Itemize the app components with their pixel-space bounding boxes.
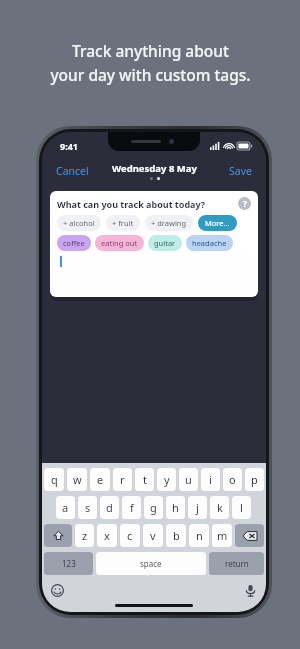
button[interactable]: v (143, 524, 163, 547)
button[interactable]: w (67, 468, 87, 491)
button[interactable]: q (44, 468, 64, 491)
staticText: j (196, 500, 199, 515)
staticText: + drawing (151, 218, 187, 228)
button[interactable]: b (166, 524, 186, 547)
button[interactable]: Cancel (52, 161, 93, 181)
staticText: Save (229, 164, 252, 178)
staticText: h (172, 500, 179, 515)
staticText: x (104, 528, 110, 543)
staticText: m (217, 528, 228, 543)
staticText: f (130, 500, 134, 515)
button[interactable]: u (179, 468, 198, 491)
staticText: l (240, 500, 243, 515)
button[interactable]: j (188, 496, 207, 519)
staticText: v (150, 528, 156, 543)
staticText: 9:41 (60, 140, 78, 152)
staticText: y (164, 472, 170, 487)
button[interactable]: Shift (44, 524, 72, 547)
button[interactable]: Emoji (51, 584, 64, 597)
button[interactable]: + drawing (145, 215, 193, 231)
staticText: n (196, 528, 203, 543)
staticText: + alcohol (63, 218, 95, 228)
staticText: eating out (101, 238, 138, 248)
staticText: ? (243, 198, 247, 209)
button[interactable]: More... (198, 215, 237, 231)
button[interactable]: x (97, 524, 117, 547)
button[interactable]: + alcohol (57, 215, 101, 231)
button[interactable]: Backspace (235, 524, 264, 547)
staticText: t (143, 472, 147, 487)
button[interactable]: space (96, 552, 206, 575)
staticText: i (209, 472, 212, 487)
staticText: Cancel (56, 164, 89, 178)
button[interactable]: Help (238, 197, 251, 210)
staticText: k (217, 500, 223, 515)
staticText: c (127, 528, 133, 543)
button[interactable]: a (56, 496, 75, 519)
button[interactable]: m (212, 524, 232, 547)
staticText: s (85, 500, 91, 515)
staticText: p (251, 472, 258, 487)
button[interactable]: k (210, 496, 229, 519)
staticText: q (51, 472, 58, 487)
button[interactable]: e (90, 468, 110, 491)
staticText: u (185, 472, 192, 487)
button[interactable]: r (113, 468, 132, 491)
staticText: 123 (62, 558, 76, 569)
button[interactable]: headache (186, 235, 233, 251)
button[interactable]: c (120, 524, 140, 547)
staticText: Track anything about (72, 40, 229, 61)
staticText: w (73, 472, 82, 487)
button[interactable]: 123 (44, 552, 93, 575)
staticText: space (140, 558, 162, 569)
staticText: b (173, 528, 180, 543)
staticText: headache (192, 238, 227, 248)
staticText: guitar (154, 238, 176, 248)
button[interactable] (57, 254, 251, 291)
button[interactable]: n (189, 524, 209, 547)
button[interactable]: i (201, 468, 220, 491)
staticText: a (62, 500, 69, 515)
button[interactable]: Dictate (244, 584, 257, 597)
staticText: g (150, 500, 157, 515)
button[interactable]: eating out (95, 235, 144, 251)
button[interactable]: Save (225, 161, 256, 181)
staticText: More... (205, 218, 230, 228)
staticText: o (229, 472, 236, 487)
button[interactable]: return (209, 552, 264, 575)
staticText: + fruit (112, 218, 134, 228)
staticText: Wednesday 8 May (112, 162, 197, 175)
staticText: d (106, 500, 113, 515)
button[interactable]: z (75, 524, 94, 547)
staticText: r (120, 472, 125, 487)
button[interactable]: y (157, 468, 176, 491)
staticText: e (97, 472, 104, 487)
staticText: your day with custom tags. (50, 64, 251, 85)
staticText: coffee (63, 238, 85, 248)
button[interactable]: t (135, 468, 154, 491)
staticText: z (82, 528, 88, 543)
button[interactable]: f (122, 496, 141, 519)
button[interactable]: l (232, 496, 251, 519)
button[interactable]: + fruit (106, 215, 140, 231)
staticText: What can you track about today? (57, 198, 238, 210)
button[interactable]: s (78, 496, 97, 519)
button[interactable]: o (223, 468, 242, 491)
button[interactable]: d (100, 496, 119, 519)
button[interactable]: coffee (57, 235, 91, 251)
staticText: return (225, 558, 249, 569)
button[interactable]: guitar (148, 235, 182, 251)
button[interactable]: g (144, 496, 163, 519)
button[interactable]: p (245, 468, 264, 491)
button[interactable]: h (166, 496, 185, 519)
